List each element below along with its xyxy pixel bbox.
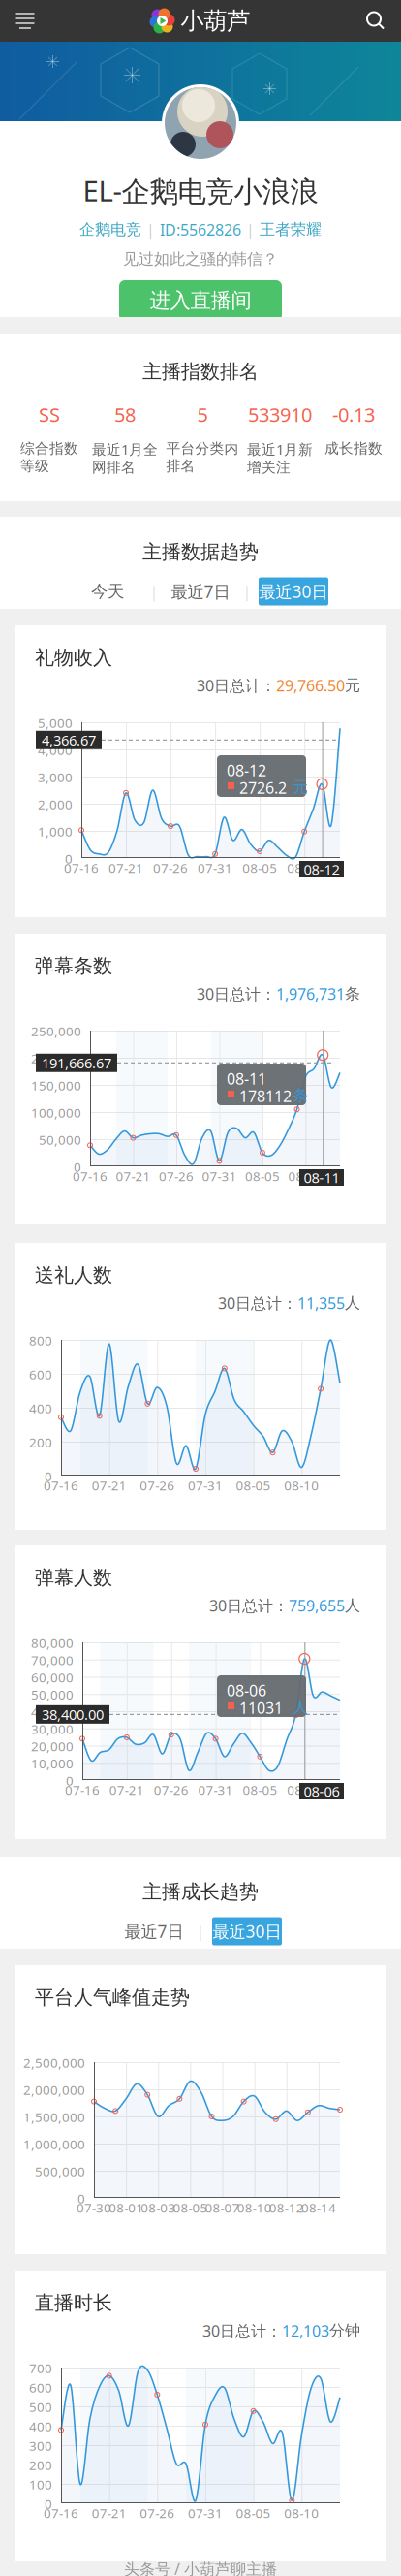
staticText: 0 [77, 2190, 85, 2207]
staticText: 07-16 [64, 859, 99, 876]
staticText: 07-31 [198, 1781, 233, 1798]
staticText: 80,000 [31, 1634, 74, 1651]
staticText: 07-16 [44, 1477, 78, 1494]
staticText: 最近1月新增关注 [247, 440, 313, 476]
staticText: 5 [197, 402, 208, 427]
staticText: 178112 [239, 1086, 292, 1106]
staticText: 800 [29, 1332, 52, 1349]
staticText: 主播指数排名 [142, 360, 259, 384]
staticText: 条 [345, 984, 360, 1003]
button[interactable]: 最近7日 [119, 1917, 189, 1945]
staticText: 50,000 [39, 1131, 81, 1148]
staticText: 人 [345, 1596, 360, 1615]
staticText: 600 [29, 1366, 52, 1383]
staticText: 07-16 [73, 1167, 108, 1185]
staticText: EL-企鹅电竞小浪浪 [83, 172, 318, 210]
staticText: 600 [29, 2379, 52, 2396]
staticText: 企鹅电竞 [79, 220, 141, 239]
button[interactable]: 小葫芦 [151, 0, 250, 42]
staticText: 0 [45, 2495, 52, 2512]
staticText: 08-05 [236, 2504, 271, 2522]
staticText: 60,000 [31, 1669, 74, 1686]
staticText: 今天 [91, 581, 124, 602]
staticText: 400 [29, 2418, 52, 2435]
staticText: 08-12 [227, 760, 266, 781]
staticText: ID:5562826 [160, 219, 241, 240]
staticText: | [243, 581, 251, 602]
staticText: 07-21 [109, 1781, 144, 1798]
staticText: 08-10 [284, 1477, 319, 1494]
staticText: 礼物收入 [35, 646, 112, 670]
staticText: 08-01 [109, 2199, 143, 2216]
staticText: 200 [29, 2456, 52, 2474]
staticText: 07-26 [154, 1781, 189, 1798]
staticText: 08-05 [243, 1781, 277, 1798]
staticText: 08-11 [304, 1168, 339, 1187]
staticText: 2,500,000 [23, 2054, 85, 2071]
staticText: 08-06 [304, 1782, 339, 1801]
staticText: 500 [29, 2398, 52, 2415]
staticText: 58 [114, 402, 136, 427]
staticText: 08-10 [284, 2504, 319, 2522]
staticText: 08-11 [227, 1068, 266, 1089]
staticText: 07-26 [159, 1167, 194, 1185]
staticText: 见过如此之骚的韩信？ [123, 250, 278, 269]
staticText: 07-21 [92, 2504, 127, 2522]
staticText: 最近1月全网排名 [92, 440, 158, 476]
staticText: 533910 [248, 402, 312, 427]
staticText: 1,000 [38, 823, 73, 840]
staticText: 08-03 [141, 2199, 176, 2216]
staticText: 人 [345, 1294, 360, 1313]
staticText: 08-06 [227, 1680, 266, 1701]
staticText: 头条号 / 小葫芦聊主播 [124, 2558, 277, 2576]
staticText: 07-26 [140, 1477, 175, 1494]
staticText: 191,666.67 [42, 1053, 111, 1072]
staticText: 主播成长趋势 [142, 1880, 259, 1904]
staticText: 08-14 [301, 2199, 336, 2216]
button[interactable]: Search [351, 0, 401, 42]
staticText: 4,000 [38, 741, 73, 758]
staticText: -0.13 [332, 402, 375, 427]
staticText: 王者荣耀 [260, 220, 322, 239]
staticText: 07-31 [202, 1167, 237, 1185]
staticText: 1,000,000 [23, 2135, 85, 2153]
staticText: 500,000 [35, 2163, 85, 2180]
staticText: 成长指数 [324, 440, 383, 457]
button[interactable]: 今天 [73, 577, 142, 606]
staticText: 0 [74, 1158, 81, 1175]
staticText: 元 [345, 676, 360, 695]
staticText: 30日总计： [218, 1293, 297, 1313]
staticText: 平台人气峰值走势 [35, 1986, 190, 2009]
staticText: 08-12 [304, 860, 339, 879]
staticText: 20,000 [31, 1737, 74, 1755]
button[interactable]: Menu [0, 0, 50, 42]
staticText: 08-05 [242, 859, 277, 876]
staticText: 小葫芦 [181, 7, 250, 35]
staticText: 38,400.00 [42, 1705, 104, 1724]
button[interactable]: 最近7日 [166, 577, 235, 606]
staticText: 主播数据趋势 [142, 540, 259, 564]
staticText: 08-10 [237, 2199, 272, 2216]
staticText: 送礼人数 [35, 1263, 112, 1287]
button[interactable]: 最近30日 [212, 1917, 282, 1945]
staticText: 直播时长 [35, 2291, 112, 2315]
staticText: 0 [65, 850, 73, 867]
staticText: 08-05 [245, 1167, 280, 1185]
staticText: 2,000,000 [23, 2081, 85, 2098]
staticText: 100 [29, 2476, 52, 2493]
staticText: 300 [29, 2437, 52, 2454]
staticText: 50,000 [31, 1686, 74, 1703]
staticText: 07-31 [188, 2504, 223, 2522]
staticText: 07-30 [77, 2199, 111, 2216]
staticText: 最近7日 [171, 580, 230, 603]
staticText: 30日总计： [209, 1595, 289, 1616]
staticText: 08-07 [205, 2199, 240, 2216]
staticText: 0 [45, 1467, 52, 1485]
staticText: 07-16 [65, 1781, 100, 1798]
staticText: 1,500,000 [23, 2108, 85, 2125]
button[interactable]: 最近30日 [259, 577, 328, 606]
staticText: 100,000 [31, 1104, 81, 1121]
staticText: 5,000 [38, 714, 73, 731]
staticText: 最近30日 [213, 1920, 281, 1943]
button[interactable]: 进入直播间 [119, 280, 282, 321]
